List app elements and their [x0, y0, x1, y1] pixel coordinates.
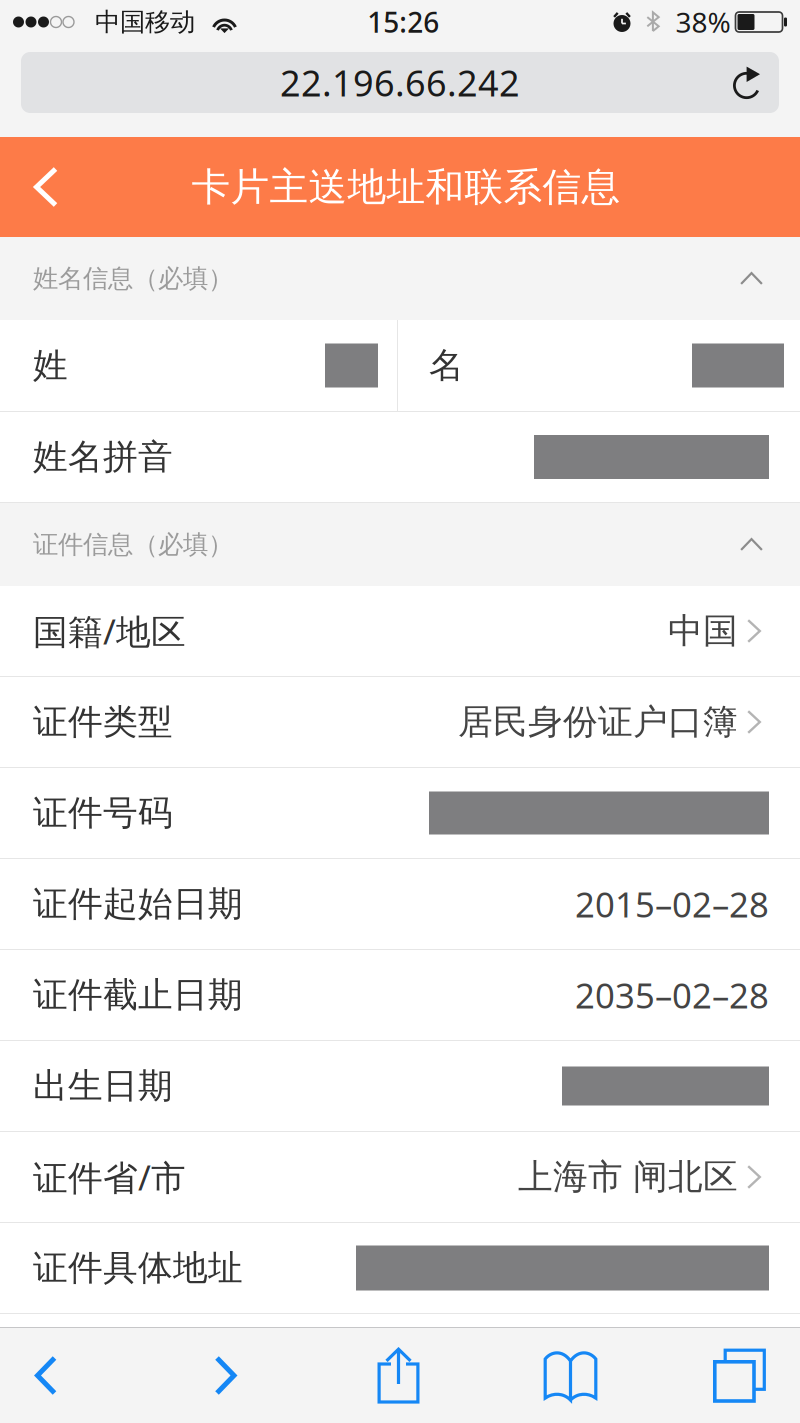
staticText: 38% — [675, 3, 730, 41]
staticText: 证件信息（必填） — [33, 529, 233, 560]
staticText: 中国移动 — [95, 6, 195, 37]
staticText: 证件具体地址 — [33, 1247, 243, 1289]
button[interactable]: Tabs — [640, 1328, 800, 1423]
staticText: 22.196.66.242 — [280, 59, 520, 106]
staticText: 卡片主送地址和联系信息 — [191, 163, 620, 211]
staticText: 上海市 闸北区 — [518, 1156, 738, 1198]
staticText: 证件截止日期 — [33, 974, 243, 1016]
staticText: 2015–02–28 — [575, 881, 769, 927]
button[interactable]: 姓名信息（必填） — [0, 237, 800, 320]
staticText: 姓名信息（必填） — [33, 263, 233, 294]
staticText: 姓 — [33, 344, 68, 387]
button[interactable]: Share — [320, 1328, 480, 1423]
staticText: 15:26 — [367, 3, 439, 41]
staticText: 中国 — [668, 610, 738, 652]
staticText: 证件类型 — [33, 701, 173, 743]
staticText: 居民身份证户口簿 — [458, 701, 738, 743]
button[interactable]: Reload — [734, 66, 779, 99]
button[interactable]: 证件省/市 — [0, 1132, 800, 1223]
staticText: 出生日期 — [33, 1065, 173, 1107]
button[interactable]: 国籍/地区 — [0, 586, 800, 677]
button[interactable]: 证件信息（必填） — [0, 503, 800, 586]
button[interactable]: 证件类型 — [0, 677, 800, 768]
button[interactable]: Bookmarks — [480, 1328, 640, 1423]
staticText: 证件号码 — [33, 792, 173, 834]
staticText: 2035–02–28 — [575, 972, 769, 1018]
staticText: 证件起始日期 — [33, 883, 243, 925]
button[interactable]: 22.196.66.242 — [21, 52, 779, 113]
staticText: 国籍/地区 — [33, 608, 186, 654]
staticText: 证件省/市 — [33, 1154, 186, 1200]
staticText: 姓名拼音 — [33, 436, 173, 478]
button[interactable]: Back — [0, 1328, 160, 1423]
button[interactable]: Back — [0, 137, 82, 237]
staticText: 名 — [429, 344, 464, 387]
button[interactable]: Forward — [160, 1328, 320, 1423]
